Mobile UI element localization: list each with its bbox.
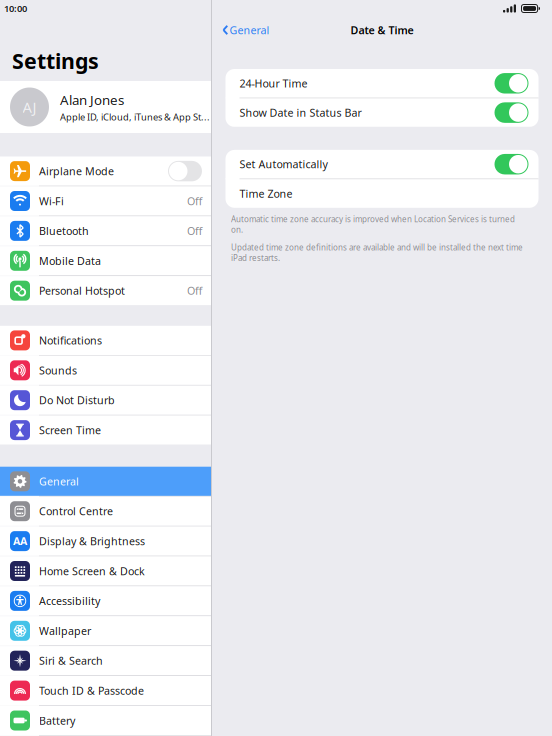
button[interactable]: Home Screen & Dock — [0, 556, 211, 586]
staticText: Siri & Search — [39, 654, 103, 668]
staticText: AA — [13, 534, 27, 548]
staticText: 24-Hour Time — [239, 76, 307, 90]
button[interactable]: Control Centre — [0, 497, 211, 526]
staticText: Updated time zone definitions are availa… — [231, 242, 523, 263]
staticText: Off — [187, 224, 202, 238]
staticText: Date & Time — [350, 23, 413, 37]
button[interactable]: General — [212, 23, 269, 37]
staticText: Display & Brightness — [39, 534, 145, 548]
button[interactable]: Wallpaper — [0, 616, 211, 645]
staticText: Automatic time zone accuracy is improved… — [231, 214, 515, 235]
staticText: Alan Jones — [60, 91, 124, 109]
button[interactable]: Accessibility — [0, 586, 211, 615]
button[interactable]: AA — [0, 526, 211, 556]
button[interactable]: Touch ID & Passcode — [0, 676, 211, 705]
button[interactable]: Battery — [0, 706, 211, 735]
staticText: Personal Hotspot — [39, 284, 125, 298]
staticText: Mobile Data — [39, 254, 101, 268]
staticText: Show Date in Status Bar — [239, 105, 361, 120]
staticText: General — [39, 474, 79, 488]
staticText: Airplane Mode — [39, 164, 114, 178]
staticText: Off — [187, 194, 202, 208]
staticText: Wallpaper — [39, 624, 91, 638]
button[interactable]: Screen Time — [0, 415, 211, 445]
button[interactable]: Wi-Fi — [0, 186, 211, 216]
staticText: Off — [187, 284, 202, 298]
staticText: AJ — [22, 97, 36, 117]
button[interactable]: Bluetooth — [0, 216, 211, 245]
button[interactable]: AJ — [0, 81, 211, 133]
button[interactable]: Set Automatically — [225, 150, 538, 178]
staticText: Settings — [12, 47, 99, 75]
staticText: Control Centre — [39, 504, 113, 518]
staticText: Bluetooth — [39, 224, 89, 238]
staticText: General — [229, 23, 269, 37]
staticText: Touch ID & Passcode — [39, 683, 144, 698]
button[interactable]: Time Zone — [225, 179, 538, 208]
staticText: Apple ID, iCloud, iTunes & App St... — [60, 111, 210, 123]
button[interactable]: 24-Hour Time — [225, 69, 538, 98]
staticText: Home Screen & Dock — [39, 564, 145, 578]
button[interactable]: Siri & Search — [0, 646, 211, 675]
button[interactable]: Do Not Disturb — [0, 386, 211, 415]
staticText: Accessibility — [39, 594, 100, 608]
staticText: Wi-Fi — [39, 194, 64, 208]
button[interactable]: Airplane Mode — [0, 156, 211, 186]
staticText: Battery — [39, 713, 75, 728]
button[interactable]: Mobile Data — [0, 246, 211, 275]
button[interactable]: Show Date in Status Bar — [225, 98, 538, 127]
staticText: Sounds — [39, 363, 77, 377]
button[interactable]: General — [0, 467, 211, 496]
staticText: Set Automatically — [239, 157, 327, 171]
staticText: Time Zone — [239, 186, 292, 201]
staticText: Screen Time — [39, 423, 101, 437]
button[interactable]: Personal Hotspot — [0, 276, 211, 305]
staticText: Do Not Disturb — [39, 393, 115, 407]
button[interactable]: Notifications — [0, 326, 211, 355]
staticText: 10:00 — [4, 2, 27, 15]
button[interactable]: Sounds — [0, 356, 211, 385]
staticText: Notifications — [39, 333, 102, 347]
